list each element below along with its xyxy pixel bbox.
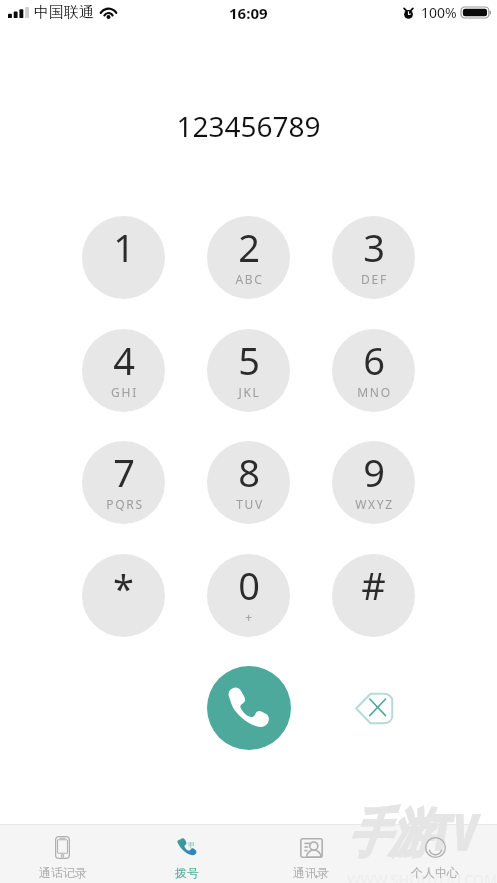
- staticText: 个人中心: [411, 865, 459, 880]
- staticText: JKL: [238, 384, 261, 400]
- staticText: 拨号: [175, 865, 199, 880]
- button[interactable]: 2: [207, 216, 290, 299]
- button[interactable]: 6: [332, 329, 415, 412]
- staticText: TUV: [236, 496, 264, 512]
- staticText: #: [361, 559, 386, 611]
- staticText: 通话记录: [39, 865, 87, 880]
- button[interactable]: 9: [332, 441, 415, 524]
- staticText: 123456789: [0, 107, 497, 145]
- staticText: ABC: [235, 271, 264, 287]
- staticText: 4: [113, 334, 135, 386]
- staticText: WWW.SHOUYOU.COM: [347, 869, 497, 883]
- button[interactable]: 通话记录: [0, 825, 125, 883]
- staticText: 手游TV: [348, 796, 478, 867]
- button[interactable]: #: [332, 554, 415, 637]
- button[interactable]: 0: [207, 554, 290, 637]
- button[interactable]: Delete: [348, 682, 400, 734]
- button[interactable]: 1: [82, 216, 165, 299]
- staticText: 0: [238, 559, 260, 611]
- staticText: 中国联通: [34, 3, 94, 22]
- staticText: 9: [363, 446, 385, 498]
- button[interactable]: 8: [207, 441, 290, 524]
- button[interactable]: 通讯录: [249, 825, 373, 883]
- staticText: 7: [113, 446, 135, 498]
- button[interactable]: 个人中心: [373, 825, 497, 883]
- button[interactable]: Call: [207, 666, 291, 750]
- button[interactable]: 5: [207, 329, 290, 412]
- button[interactable]: 7: [82, 441, 165, 524]
- staticText: WXYZ: [355, 496, 394, 512]
- button[interactable]: 4: [82, 329, 165, 412]
- staticText: 8: [238, 446, 260, 498]
- staticText: DEF: [361, 271, 388, 287]
- staticText: 5: [238, 334, 260, 386]
- staticText: 1: [113, 221, 135, 273]
- staticText: +: [245, 609, 254, 625]
- staticText: GHI: [111, 384, 138, 400]
- staticText: 16:09: [229, 3, 268, 23]
- staticText: 3: [363, 221, 385, 273]
- staticText: *: [113, 562, 134, 614]
- button[interactable]: *: [82, 554, 165, 637]
- button[interactable]: 3: [332, 216, 415, 299]
- button[interactable]: 拨号: [125, 825, 249, 883]
- staticText: 2: [238, 221, 260, 273]
- staticText: PQRS: [106, 496, 144, 512]
- staticText: 100%: [421, 3, 457, 22]
- staticText: MNO: [357, 384, 392, 400]
- staticText: 通讯录: [293, 865, 329, 880]
- staticText: 6: [363, 334, 385, 386]
